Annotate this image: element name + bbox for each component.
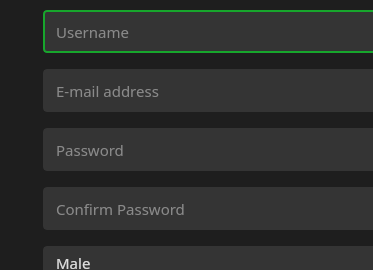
- button[interactable]: E-mail address: [43, 69, 373, 112]
- staticText: Username: [56, 22, 129, 42]
- button[interactable]: Select gender: [43, 246, 373, 270]
- staticText: Password: [56, 140, 124, 160]
- button[interactable]: Confirm Password: [43, 187, 373, 230]
- staticText: E-mail address: [56, 81, 159, 101]
- button[interactable]: Username: [43, 10, 373, 53]
- button[interactable]: Password: [43, 128, 373, 171]
- staticText: Confirm Password: [56, 199, 185, 219]
- staticText: Male: [56, 253, 91, 270]
